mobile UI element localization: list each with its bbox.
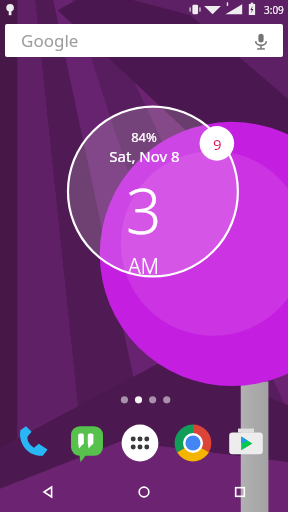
- button[interactable]: Google: [5, 24, 283, 57]
- button[interactable]: Home: [96, 472, 192, 512]
- button[interactable]: Play Store: [226, 423, 266, 463]
- staticText: Sat, Nov 8: [109, 146, 180, 166]
- button[interactable]: Phone: [14, 423, 54, 463]
- button[interactable]: Hangouts: [67, 423, 107, 463]
- button[interactable]: Voice search: [249, 29, 273, 53]
- staticText: AM: [128, 252, 160, 281]
- button[interactable]: Back: [0, 472, 96, 512]
- staticText: Google: [21, 29, 79, 52]
- staticText: 3: [126, 168, 162, 252]
- staticText: 84%: [131, 128, 157, 146]
- button[interactable]: Apps: [120, 423, 160, 463]
- staticText: 3:09: [264, 3, 284, 17]
- button[interactable]: Recents: [192, 472, 288, 512]
- button[interactable]: Chrome: [173, 423, 213, 463]
- staticText: 9: [213, 134, 222, 154]
